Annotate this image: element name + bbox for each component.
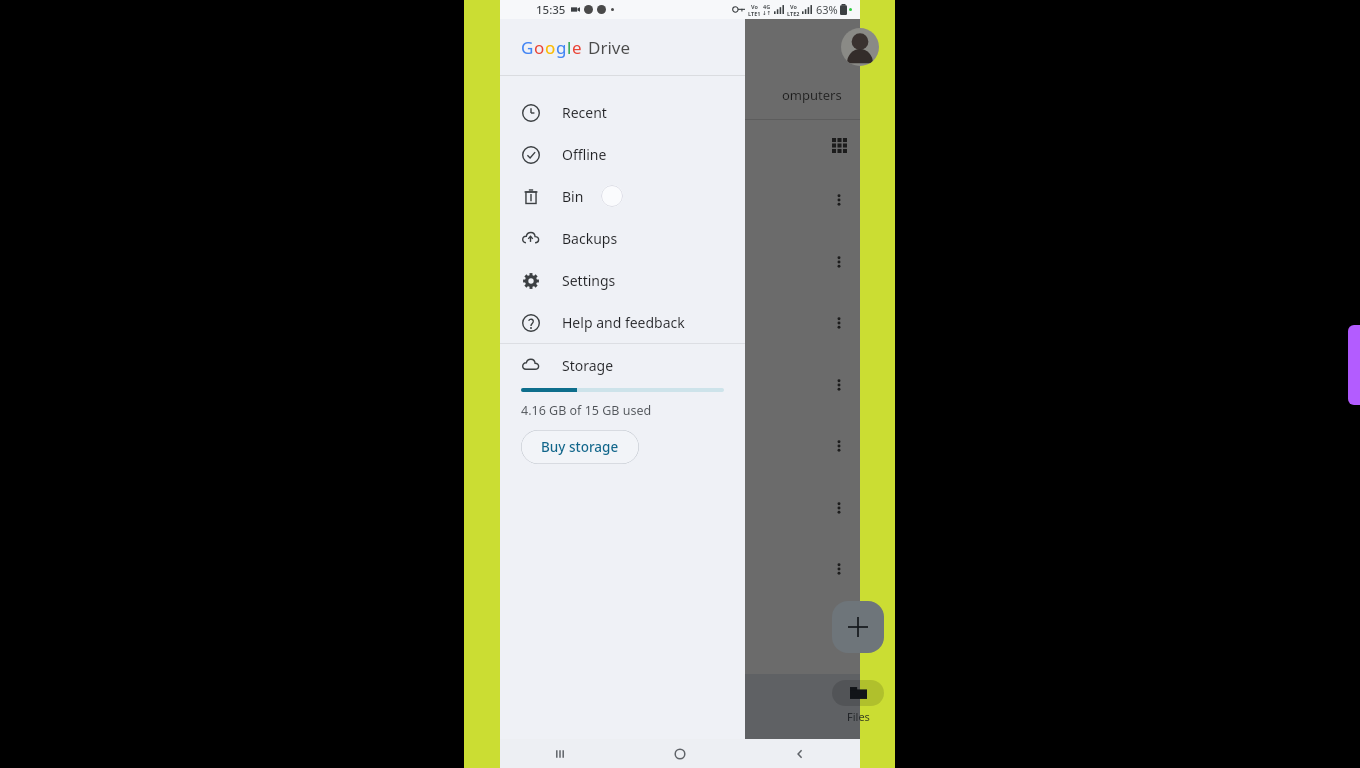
staticText: Vo bbox=[751, 3, 758, 10]
button[interactable]: Recents bbox=[500, 739, 620, 768]
button[interactable]: G bbox=[500, 19, 745, 75]
button[interactable]: More options bbox=[825, 494, 853, 522]
button[interactable]: More options bbox=[825, 248, 853, 276]
button[interactable]: More options bbox=[825, 371, 853, 399]
button[interactable]: Account bbox=[841, 28, 879, 66]
staticText: LTE1 bbox=[748, 10, 761, 17]
staticText: Settings bbox=[562, 271, 616, 290]
button[interactable]: Files bbox=[832, 680, 884, 724]
button[interactable]: Recent bbox=[500, 91, 745, 133]
staticText: Drive bbox=[588, 36, 631, 59]
staticText: o bbox=[534, 36, 545, 59]
button[interactable]: More options bbox=[825, 186, 853, 214]
button[interactable]: Back bbox=[740, 739, 860, 768]
button[interactable]: Grid view bbox=[825, 131, 853, 159]
staticText: g bbox=[556, 36, 567, 59]
staticText: e bbox=[572, 36, 582, 59]
staticText: 15:35 bbox=[536, 2, 566, 18]
staticText: G bbox=[521, 36, 534, 59]
button[interactable]: Offline bbox=[500, 133, 745, 175]
button[interactable]: Home bbox=[620, 739, 740, 768]
staticText: 4G bbox=[763, 3, 771, 10]
button[interactable]: More options bbox=[825, 555, 853, 583]
staticText: 4.16 GB of 15 GB used bbox=[521, 402, 652, 419]
staticText: Buy storage bbox=[541, 438, 619, 456]
staticText: 63% bbox=[816, 2, 838, 17]
button[interactable]: Bin bbox=[500, 175, 745, 217]
staticText: Offline bbox=[562, 145, 607, 164]
staticText: Files bbox=[847, 709, 870, 724]
staticText: omputers bbox=[782, 86, 842, 104]
staticText: l bbox=[567, 36, 572, 59]
button[interactable]: Storage bbox=[500, 344, 745, 386]
button[interactable]: Help and feedback bbox=[500, 301, 745, 343]
staticText: ↓↑ bbox=[762, 10, 772, 16]
button[interactable]: More options bbox=[825, 309, 853, 337]
staticText: o bbox=[545, 36, 556, 59]
button[interactable]: Backups bbox=[500, 217, 745, 259]
staticText: Recent bbox=[562, 103, 607, 122]
staticText: Help and feedback bbox=[562, 313, 685, 332]
button[interactable]: Buy storage bbox=[521, 430, 639, 464]
staticText: Bin bbox=[562, 187, 584, 206]
button[interactable]: More options bbox=[825, 432, 853, 460]
staticText: LTE2 bbox=[787, 10, 800, 17]
staticText: Backups bbox=[562, 229, 618, 248]
button[interactable]: Settings bbox=[500, 259, 745, 301]
staticText: Storage bbox=[562, 356, 614, 375]
staticText: Vo bbox=[790, 3, 797, 10]
button[interactable]: Create bbox=[832, 601, 884, 653]
